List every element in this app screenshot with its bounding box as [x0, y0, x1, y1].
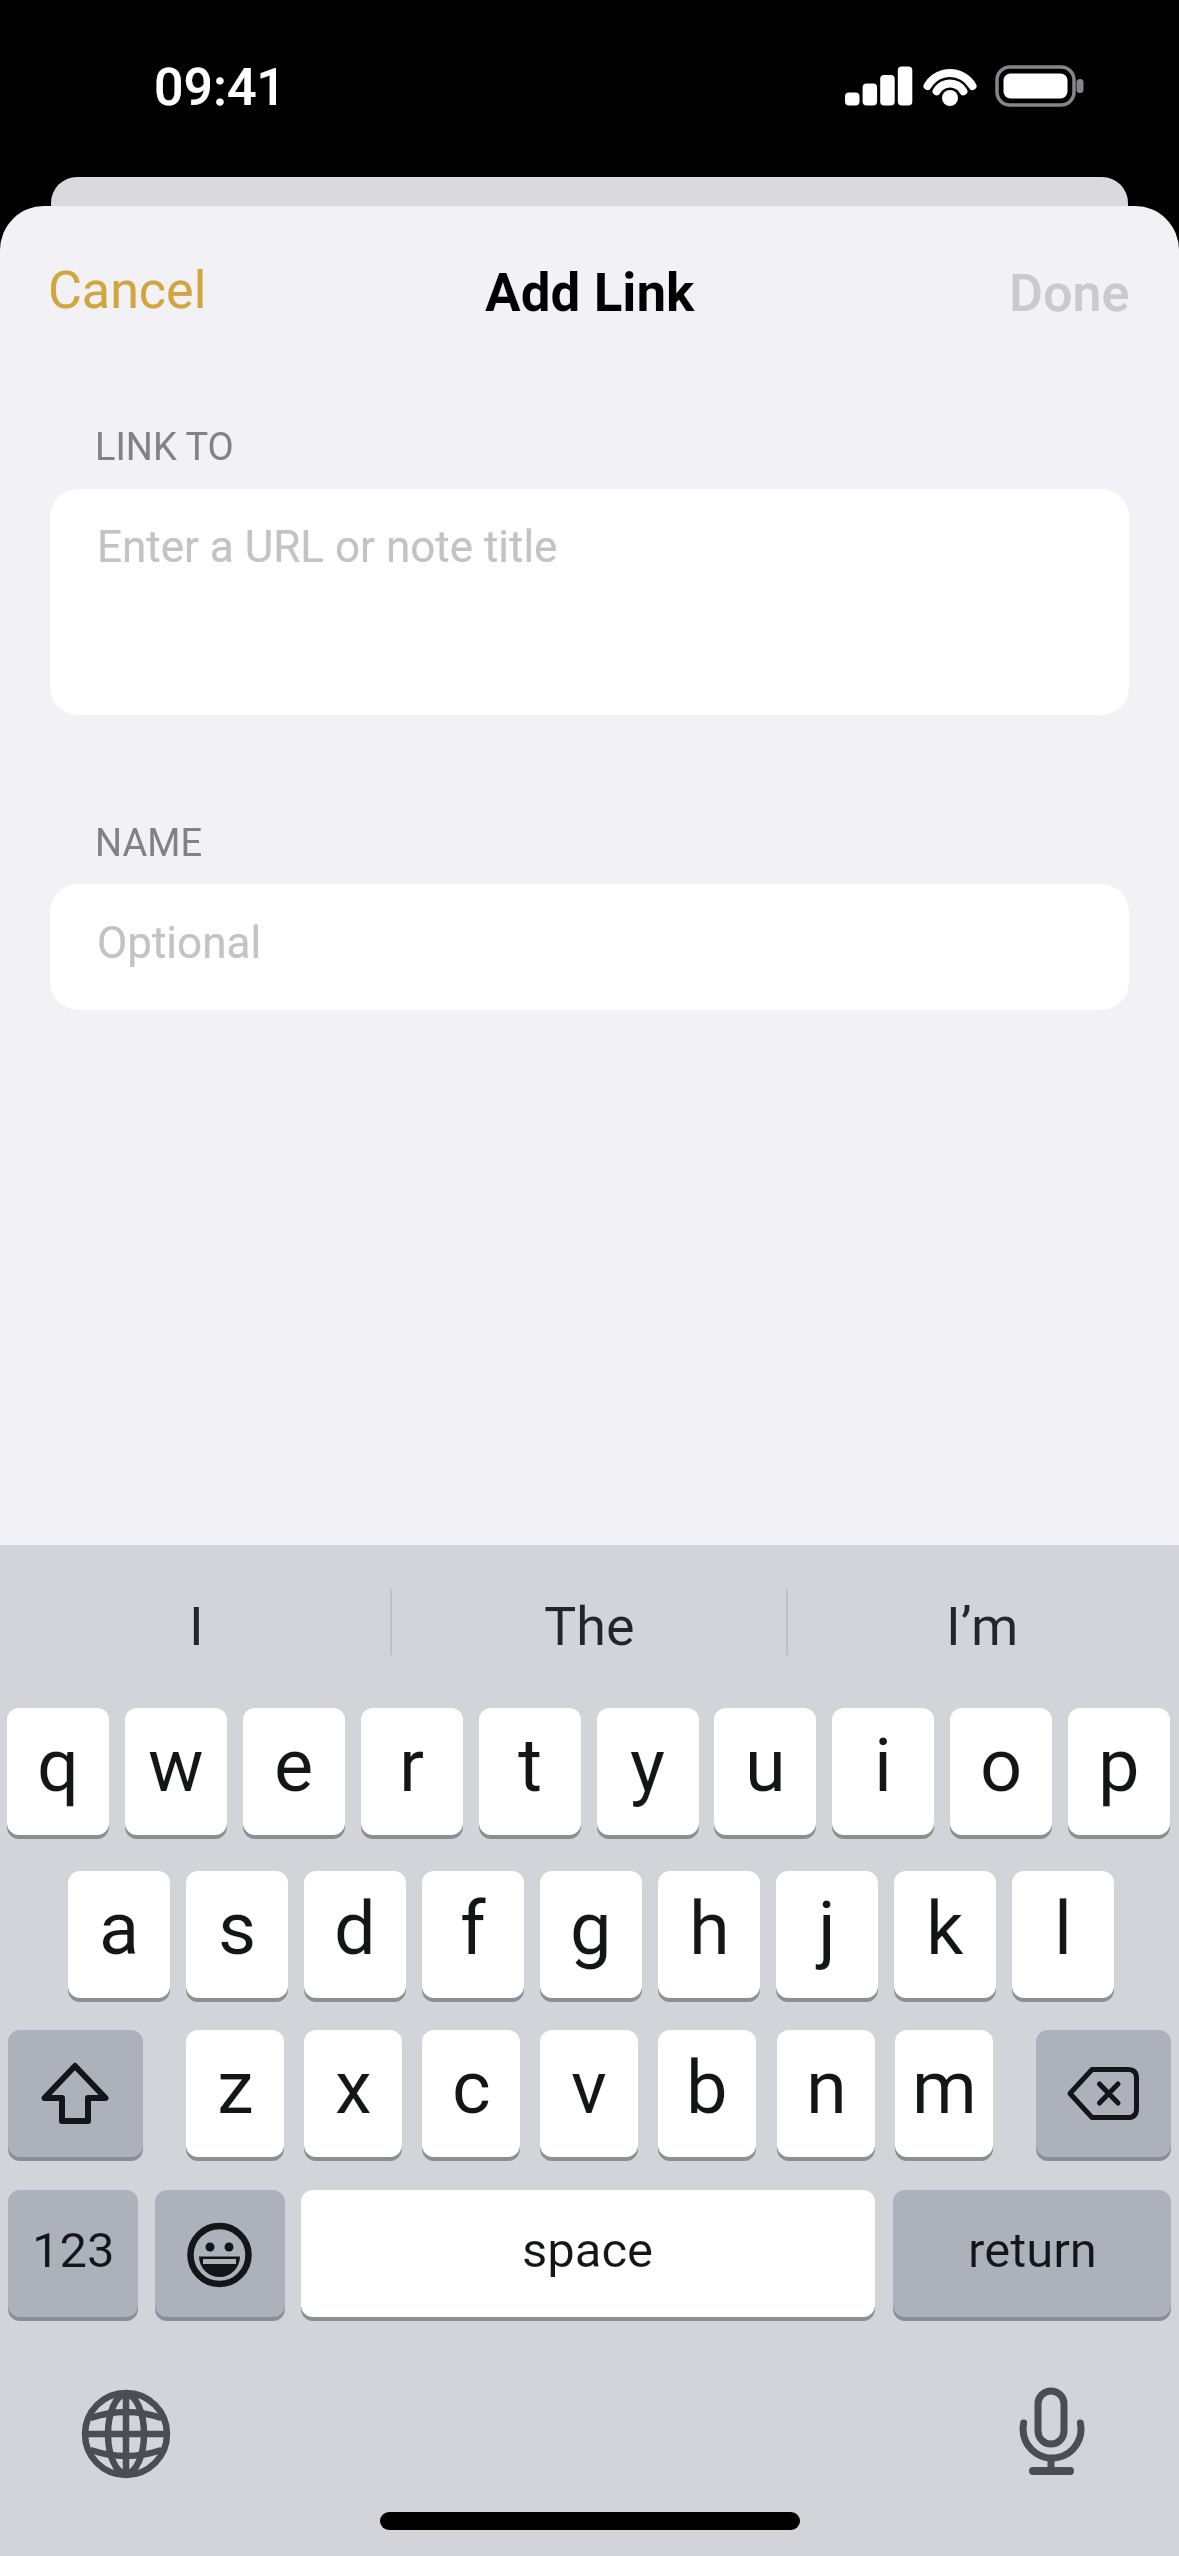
button[interactable]: The	[393, 1581, 786, 1671]
staticText: s	[218, 1885, 257, 1972]
staticText: b	[686, 2044, 728, 2131]
button[interactable]: k	[894, 1871, 996, 1998]
staticText: return	[968, 2222, 1097, 2279]
staticText: Done	[1009, 263, 1130, 324]
staticText: g	[570, 1885, 612, 1972]
staticText: f	[460, 1885, 486, 1972]
staticText: w	[148, 1722, 204, 1809]
button[interactable]: 123	[8, 2190, 138, 2317]
staticText: k	[926, 1885, 964, 1972]
button[interactable]: n	[777, 2030, 875, 2157]
button[interactable]: j	[776, 1871, 878, 1998]
staticText: o	[980, 1722, 1023, 1809]
button[interactable]: i	[832, 1708, 934, 1835]
staticText: I	[189, 1595, 204, 1658]
button[interactable]: w	[125, 1708, 227, 1835]
button[interactable]: y	[597, 1708, 699, 1835]
button[interactable]: g	[540, 1871, 642, 1998]
staticText: u	[745, 1722, 786, 1809]
staticText: y	[630, 1722, 666, 1809]
staticText: l	[1054, 1885, 1072, 1972]
button[interactable]: b	[658, 2030, 756, 2157]
staticText: q	[37, 1722, 80, 1809]
staticText: p	[1098, 1722, 1140, 1809]
button[interactable]: f	[422, 1871, 524, 1998]
button[interactable]: z	[186, 2030, 284, 2157]
staticText: t	[518, 1722, 543, 1809]
button[interactable]: Enter a URL or note title	[50, 489, 1129, 715]
staticText: i	[874, 1722, 892, 1809]
staticText: h	[689, 1885, 730, 1972]
button[interactable]: space	[301, 2190, 875, 2317]
staticText: The	[544, 1595, 635, 1658]
staticText: space	[522, 2222, 654, 2279]
button[interactable]: Done	[949, 262, 1130, 324]
staticText: 09:41	[154, 57, 287, 118]
staticText: Optional	[97, 917, 262, 969]
staticText: I’m	[946, 1595, 1019, 1658]
button[interactable]: l	[1012, 1871, 1114, 1998]
button[interactable]: q	[7, 1708, 109, 1835]
staticText: z	[217, 2044, 254, 2131]
staticText: 123	[32, 2222, 115, 2279]
button[interactable]: r	[361, 1708, 463, 1835]
staticText: x	[335, 2044, 372, 2131]
staticText: e	[274, 1722, 314, 1809]
staticText: r	[399, 1722, 425, 1809]
button[interactable]	[8, 2030, 143, 2157]
staticText: LINK TO	[95, 425, 234, 470]
button[interactable]: a	[68, 1871, 170, 1998]
button[interactable]: e	[243, 1708, 345, 1835]
button[interactable]: p	[1068, 1708, 1170, 1835]
button[interactable]	[1002, 2384, 1102, 2484]
staticText: n	[806, 2044, 847, 2131]
button[interactable]: c	[422, 2030, 520, 2157]
button[interactable]	[78, 2384, 178, 2484]
button[interactable]: d	[304, 1871, 406, 1998]
button[interactable]: m	[895, 2030, 993, 2157]
button[interactable]: h	[658, 1871, 760, 1998]
button[interactable]	[155, 2190, 285, 2317]
button[interactable]	[1036, 2030, 1171, 2157]
button[interactable]: x	[304, 2030, 402, 2157]
staticText: Add Link	[485, 262, 695, 324]
staticText: j	[818, 1885, 836, 1972]
button[interactable]: u	[714, 1708, 816, 1835]
staticText: c	[452, 2044, 491, 2131]
button[interactable]: s	[186, 1871, 288, 1998]
button[interactable]: I	[0, 1581, 393, 1671]
staticText: NAME	[95, 821, 203, 866]
staticText: Enter a URL or note title	[97, 521, 558, 573]
button[interactable]: v	[540, 2030, 638, 2157]
button[interactable]: Optional	[50, 884, 1129, 1010]
button[interactable]: t	[479, 1708, 581, 1835]
button[interactable]: o	[950, 1708, 1052, 1835]
button[interactable]: return	[893, 2190, 1171, 2317]
button[interactable]: I’m	[786, 1581, 1179, 1671]
staticText: m	[912, 2044, 977, 2131]
staticText: d	[334, 1885, 376, 1972]
staticText: a	[99, 1885, 140, 1972]
staticText: v	[571, 2044, 607, 2131]
